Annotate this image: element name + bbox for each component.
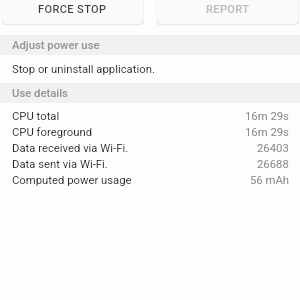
button[interactable]: CPU total	[0, 108, 300, 124]
staticText: Stop or uninstall application.	[12, 63, 155, 76]
staticText: FORCE STOP	[38, 3, 107, 16]
staticText: 16m 29s	[245, 126, 289, 139]
button[interactable]: Data received via Wi-Fi.	[0, 140, 300, 156]
staticText: Data sent via Wi-Fi.	[12, 158, 108, 171]
staticText: 26688	[257, 158, 289, 171]
staticText: REPORT	[206, 3, 250, 16]
button[interactable]: FORCE STOP	[2, 0, 143, 24]
staticText: Adjust power use	[12, 39, 100, 52]
button[interactable]: Data sent via Wi-Fi.	[0, 156, 300, 172]
staticText: CPU total	[12, 110, 60, 123]
staticText: 56 mAh	[250, 174, 289, 187]
button[interactable]: Stop or uninstall application	[0, 55, 300, 83]
staticText: Use details	[12, 87, 68, 100]
staticText: 16m 29s	[245, 110, 289, 123]
staticText: CPU foreground	[12, 126, 93, 139]
button[interactable]: Computed power usage	[0, 172, 300, 188]
button[interactable]: CPU foreground	[0, 124, 300, 140]
staticText: Data received via Wi-Fi.	[12, 142, 129, 155]
button[interactable]: REPORT	[157, 0, 298, 24]
staticText: 26403	[257, 142, 289, 155]
staticText: Computed power usage	[12, 174, 132, 187]
